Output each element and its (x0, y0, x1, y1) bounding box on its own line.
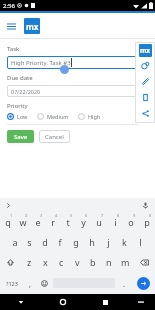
staticText: 3 (40, 213, 43, 218)
button[interactable]: s (22, 232, 37, 252)
button[interactable]: z (21, 252, 37, 272)
staticText: c (59, 256, 64, 268)
button[interactable]: Save (7, 130, 34, 143)
button[interactable]: . (117, 272, 131, 294)
button[interactable]: Sync (136, 57, 154, 73)
staticText: 2:56 (3, 2, 15, 10)
button[interactable]: p (139, 212, 155, 232)
button[interactable]: i (107, 212, 123, 232)
button[interactable]: e (30, 212, 45, 232)
staticText: w (19, 216, 27, 228)
staticText: Medium (47, 113, 69, 120)
staticText: j (107, 236, 110, 248)
staticText: 1 (10, 213, 13, 218)
button[interactable]: High Priority. Task #3 (7, 56, 138, 69)
staticText: High Priority. Task #3 (11, 59, 71, 67)
staticText: n (106, 256, 112, 268)
button[interactable]: Menu (0, 15, 22, 37)
staticText: . (123, 278, 126, 289)
staticText: z (27, 256, 32, 268)
staticText: i (114, 216, 117, 228)
button[interactable]: Voice input (140, 200, 151, 211)
staticText: h (89, 236, 95, 248)
button[interactable]: n (101, 252, 117, 272)
staticText: 8 (117, 213, 120, 218)
button[interactable]: Switch keyboard (126, 294, 155, 310)
button[interactable]: g (68, 232, 84, 252)
button[interactable]: Low (7, 113, 28, 120)
button[interactable]: r (45, 212, 60, 232)
button[interactable]: h (84, 232, 100, 252)
staticText: o (128, 216, 134, 228)
button[interactable]: y (75, 212, 91, 232)
staticText: Save (14, 133, 28, 141)
staticText: g (73, 236, 79, 248)
button[interactable]: Device preview (136, 89, 154, 105)
staticText: Cancel (45, 133, 64, 141)
button[interactable]: k (116, 232, 132, 252)
staticText: 7 (101, 213, 104, 218)
button[interactable]: Emoji (37, 272, 51, 294)
button[interactable]: j (100, 232, 116, 252)
staticText: k (122, 236, 127, 248)
button[interactable]: u (91, 212, 107, 232)
button[interactable]: , (23, 272, 37, 294)
button[interactable]: Edit (136, 73, 154, 89)
button[interactable]: o (123, 212, 139, 232)
staticText: 9 (133, 213, 136, 218)
button[interactable]: m (117, 252, 133, 272)
button[interactable]: Hide keyboard (0, 294, 42, 310)
button[interactable]: v (69, 252, 85, 272)
staticText: v (75, 256, 80, 268)
staticText: 6 (85, 213, 88, 218)
button[interactable]: w (15, 212, 30, 232)
staticText: d (42, 236, 48, 248)
button[interactable]: Medium (37, 113, 69, 120)
staticText: f (58, 236, 62, 248)
staticText: Due date (7, 74, 33, 82)
button[interactable]: l (132, 232, 148, 252)
staticText: x (43, 256, 48, 268)
staticText: ?123 (6, 280, 18, 287)
staticText: 0 (149, 213, 152, 218)
staticText: 07/22/2020 (11, 88, 41, 95)
staticText: , (29, 278, 32, 289)
staticText: u (96, 216, 102, 228)
button[interactable]: d (37, 232, 52, 252)
staticText: p (144, 216, 150, 228)
button[interactable]: x (37, 252, 53, 272)
button[interactable]: Mendix (139, 44, 152, 57)
staticText: a (12, 236, 18, 248)
staticText: y (81, 216, 86, 228)
staticText: Low (17, 113, 28, 120)
button[interactable]: Backspace (133, 252, 155, 272)
button[interactable]: 07/22/2020 (7, 85, 138, 97)
button[interactable]: Cancel (39, 130, 70, 143)
button[interactable]: Home (42, 294, 84, 310)
staticText: b (90, 256, 96, 268)
button[interactable]: f (52, 232, 68, 252)
button[interactable]: Shift (0, 252, 21, 272)
button[interactable]: Mendix logo (24, 18, 40, 34)
staticText: Priority (7, 102, 28, 110)
staticText: Task (7, 45, 20, 53)
button[interactable]: Enter (137, 277, 150, 290)
button[interactable]: b (85, 252, 101, 272)
button[interactable]: Expand suggestions (3, 200, 13, 210)
staticText: s (27, 236, 32, 248)
button[interactable]: ?123 (0, 272, 23, 294)
staticText: q (5, 216, 11, 228)
staticText: e (35, 216, 41, 228)
button[interactable]: q (0, 212, 15, 232)
button[interactable]: c (53, 252, 69, 272)
button[interactable]: Share (136, 105, 154, 121)
staticText: l (139, 236, 142, 248)
staticText: m (121, 256, 130, 268)
button[interactable]: a (7, 232, 22, 252)
button[interactable]: High (78, 113, 101, 120)
staticText: mx (26, 21, 39, 32)
button[interactable]: Recent apps (84, 294, 126, 310)
staticText: High (88, 113, 101, 120)
button[interactable]: t (60, 212, 75, 232)
